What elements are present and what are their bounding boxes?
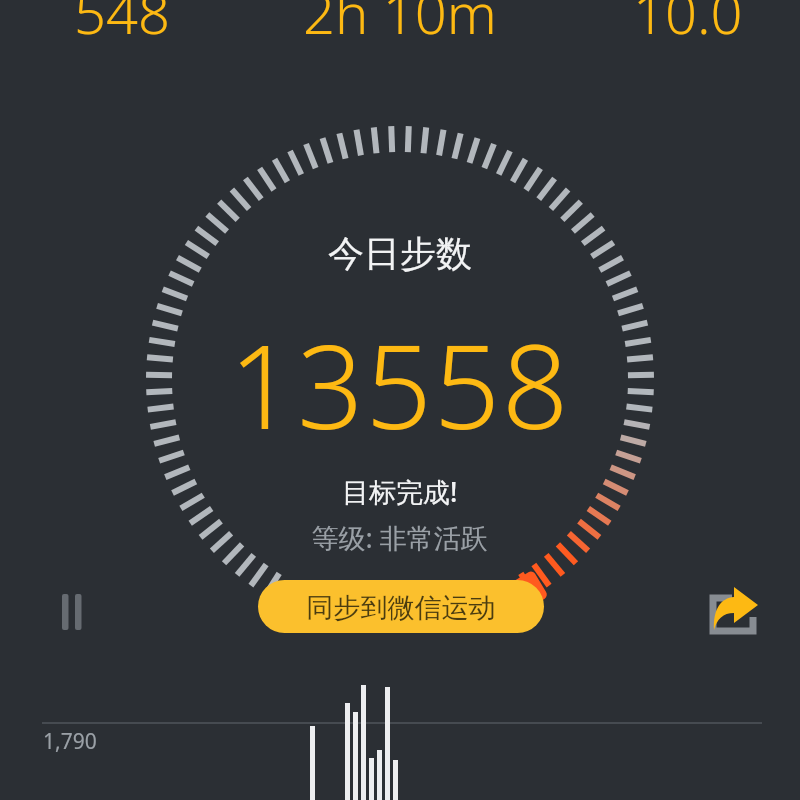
button[interactable]: 同步到微信运动 <box>258 580 544 633</box>
button[interactable]: Pause <box>46 580 98 644</box>
button[interactable]: Share <box>700 578 768 644</box>
